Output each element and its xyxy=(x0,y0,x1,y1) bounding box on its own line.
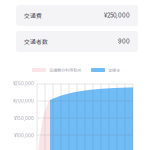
staticText: 交通者数 xyxy=(24,37,48,46)
staticText: ¥100,000 xyxy=(14,133,34,138)
button[interactable]: 交通費 xyxy=(16,5,138,26)
staticText: ¥250,000 xyxy=(13,81,34,86)
staticText: ¥250,000 xyxy=(104,12,130,19)
staticText: ¥200,000 xyxy=(13,98,34,104)
staticText: 交通費 xyxy=(24,11,42,20)
staticText: 支援金 xyxy=(108,67,120,73)
button[interactable]: 交通者数 xyxy=(16,31,138,52)
staticText: 900 xyxy=(118,38,130,45)
staticText: 交通費の利用有効 xyxy=(49,67,81,73)
staticText: ¥150,000 xyxy=(14,116,34,121)
